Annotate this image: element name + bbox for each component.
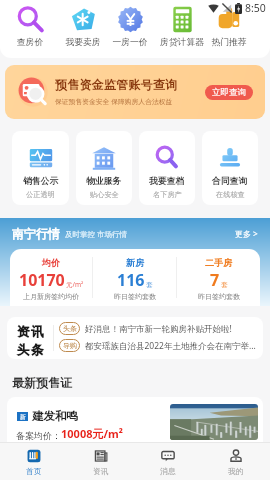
button[interactable]: 查房价: [3, 6, 57, 48]
staticText: 新房: [126, 257, 144, 268]
button[interactable]: 销售公示: [12, 131, 69, 205]
staticText: 头条: [63, 324, 77, 333]
staticText: 合同查询: [212, 176, 248, 187]
staticText: 保证预售资金安全 保障购房人合法权益: [55, 97, 173, 106]
staticText: 10170: [19, 269, 65, 291]
staticText: 销售公示: [23, 176, 59, 187]
staticText: 8:50: [245, 1, 266, 15]
staticText: 均价: [42, 257, 60, 268]
staticText: 套: [146, 281, 153, 289]
staticText: 昨日签约套数: [114, 292, 156, 301]
staticText: 预售资金监管账号查询: [55, 77, 177, 92]
staticText: 资讯: [17, 324, 46, 340]
staticText: 最新预售证: [12, 375, 72, 390]
staticText: 116: [117, 269, 145, 291]
staticText: 备案均价：: [16, 430, 61, 441]
button[interactable]: 立即查询: [205, 85, 253, 100]
staticText: 都安瑶族自治县2022年土地推介会在南宁举...: [85, 340, 256, 352]
staticText: 元/m²: [66, 280, 84, 289]
staticText: 首页: [26, 466, 42, 476]
button[interactable]: 物业服务: [76, 131, 132, 205]
staticText: 我的: [228, 466, 244, 476]
staticText: 导购: [63, 341, 77, 350]
staticText: 上月新房签约均价: [23, 292, 79, 301]
button[interactable]: 预售资金监管账号查询: [5, 65, 265, 119]
staticText: 物业服务: [86, 176, 122, 187]
staticText: 我要查档: [149, 176, 185, 187]
staticText: 及时掌控 市场行情: [65, 229, 127, 239]
staticText: 南宁行情: [12, 226, 60, 241]
staticText: 10008元/m²: [61, 426, 123, 441]
staticText: 头条: [17, 342, 46, 358]
staticText: 在线核查: [216, 190, 245, 199]
staticText: 昨日签约套数: [198, 292, 240, 301]
button[interactable]: 合同查询: [202, 131, 258, 205]
staticText: 7: [210, 269, 220, 291]
staticText: 一房一价: [103, 37, 157, 48]
staticText: 二手房: [205, 257, 232, 268]
staticText: 房贷计算器: [155, 37, 209, 48]
button[interactable]: 消息: [134, 443, 202, 480]
staticText: 建发和鸣: [32, 409, 78, 423]
staticText: 公正透明: [26, 190, 55, 199]
staticText: 我要卖房: [56, 37, 110, 48]
button[interactable]: 我要卖房: [56, 6, 110, 48]
button[interactable]: 我的: [202, 443, 270, 480]
button[interactable]: 首页: [0, 443, 67, 480]
staticText: 查房价: [3, 37, 57, 48]
staticText: 贴心安全: [90, 190, 119, 199]
button[interactable]: 导购: [59, 339, 256, 352]
button[interactable]: 资讯: [67, 443, 134, 480]
staticText: 名下房产: [153, 190, 182, 199]
button[interactable]: 我要查档: [139, 131, 195, 205]
button[interactable]: 一房一价: [103, 6, 157, 48]
button[interactable]: 二手房: [177, 249, 260, 306]
button[interactable]: 新: [7, 397, 263, 443]
staticText: 立即查询: [212, 87, 246, 98]
staticText: 新: [20, 413, 26, 421]
button[interactable]: 头条: [59, 322, 232, 335]
staticText: 套: [221, 281, 228, 289]
button[interactable]: 房贷计算器: [155, 6, 209, 48]
staticText: 更多 >: [235, 228, 258, 239]
button[interactable]: 均价: [10, 249, 92, 306]
staticText: 消息: [160, 466, 176, 476]
button[interactable]: 新房: [93, 249, 176, 306]
button[interactable]: 热门推荐: [202, 6, 256, 48]
staticText: 资讯: [93, 466, 109, 476]
staticText: 好消息！南宁市新一轮购房补贴开始啦!: [85, 323, 232, 335]
staticText: 热门推荐: [202, 37, 256, 48]
button[interactable]: 更多 >: [235, 228, 258, 239]
